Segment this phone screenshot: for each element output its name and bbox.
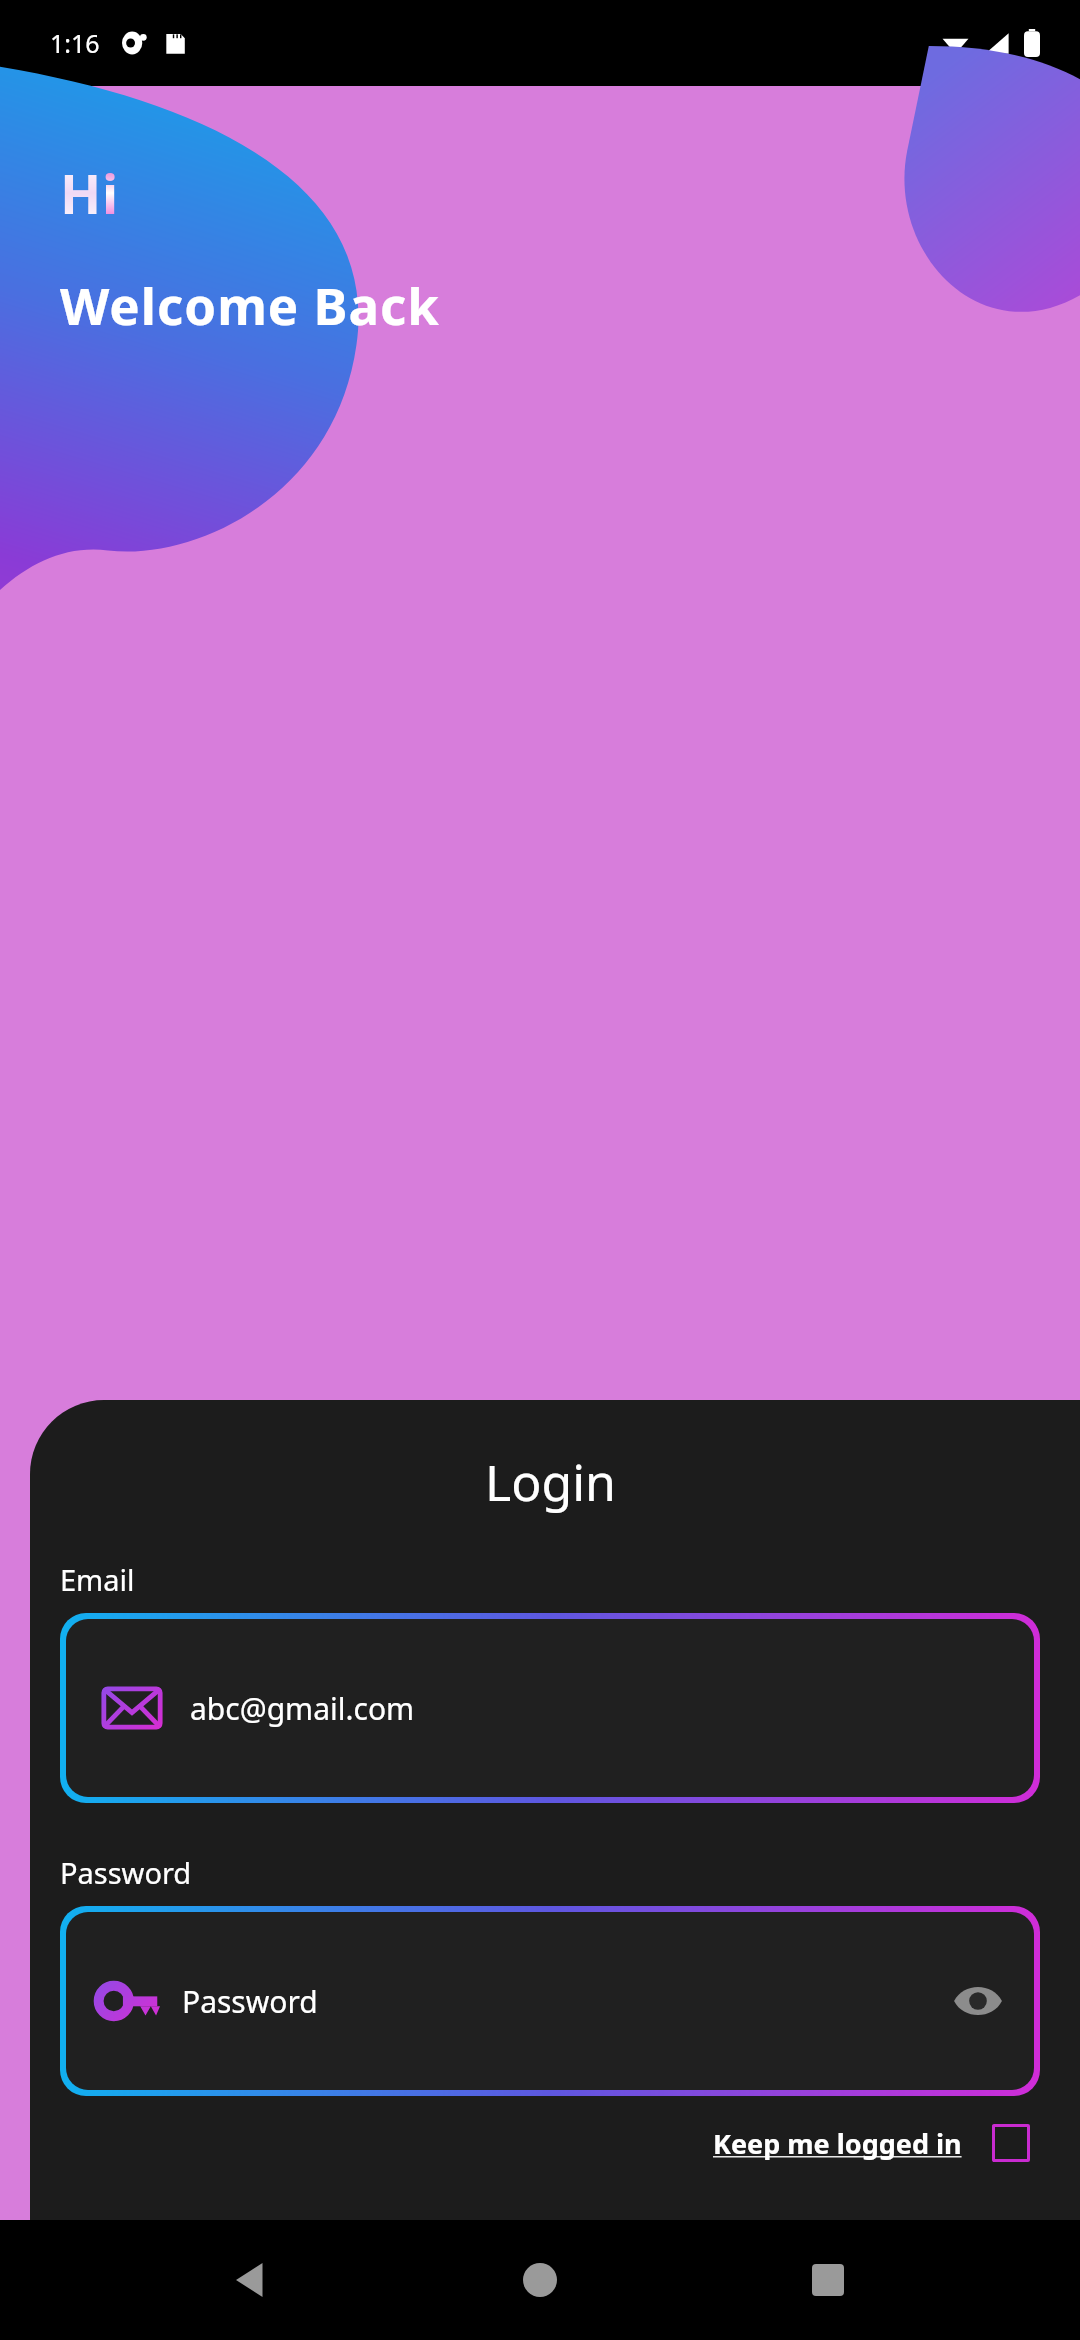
button[interactable]: Password [66, 1912, 1034, 2090]
button[interactable]: Keep me logged in [713, 2124, 1030, 2162]
button[interactable]: Recent apps [793, 2245, 863, 2315]
button[interactable]: Home [505, 2245, 575, 2315]
button[interactable]: Show password [952, 1975, 1004, 2027]
staticText: Login [485, 1448, 616, 1516]
staticText: Password [60, 1853, 192, 1892]
staticText: Welcome Back [60, 270, 440, 339]
staticText: Keep me logged in [713, 2125, 962, 2162]
staticText: Password [182, 1981, 318, 2022]
button[interactable]: Back [218, 2245, 288, 2315]
staticText: 1:16 [50, 26, 100, 60]
button[interactable]: abc@gmail.com [66, 1619, 1034, 1797]
staticText: i [102, 156, 119, 230]
staticText: Email [60, 1560, 135, 1599]
staticText: H [60, 156, 102, 230]
staticText: abc@gmail.com [190, 1688, 415, 1729]
